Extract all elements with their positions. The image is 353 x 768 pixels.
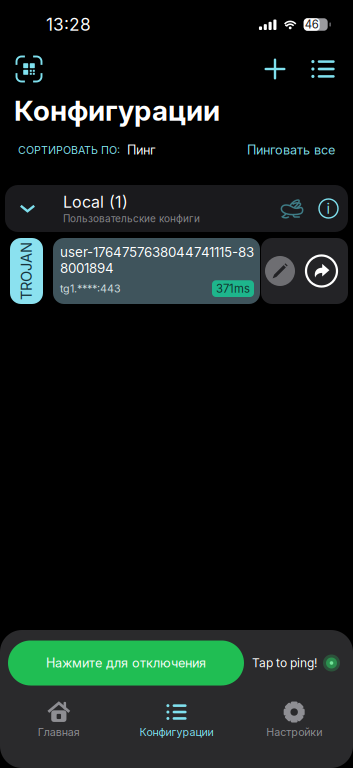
- button[interactable]: user-1764757638044741115-838001894: [53, 238, 260, 304]
- button[interactable]: Конфигурации: [118, 696, 235, 744]
- staticText: tg1.****:443: [60, 282, 121, 295]
- button[interactable]: Edit configuration: [265, 256, 295, 286]
- staticText: i: [326, 200, 330, 217]
- staticText: Главная: [38, 725, 80, 738]
- button[interactable]: Local (1): [5, 185, 348, 232]
- staticText: Пользовательские конфиги: [63, 213, 200, 225]
- button[interactable]: Главная: [0, 696, 118, 744]
- staticText: Конфигурации: [139, 725, 213, 738]
- staticText: Пинговать все: [247, 142, 335, 158]
- staticText: user-1764757638044741115-838001894: [60, 244, 254, 276]
- button[interactable]: Пинговать все: [247, 138, 335, 162]
- button[interactable]: Share configuration: [306, 255, 337, 286]
- staticText: TROJAN: [0, 262, 55, 280]
- staticText: Нажмите для отключения: [46, 655, 206, 671]
- button[interactable]: Tap to ping: [252, 654, 340, 671]
- staticText: Настройки: [266, 725, 322, 738]
- staticText: Конфигурации: [14, 94, 220, 127]
- staticText: 46: [305, 18, 319, 31]
- staticText: 13:28: [46, 14, 91, 35]
- staticText: СОРТИРОВАТЬ ПО:: [18, 143, 120, 156]
- button[interactable]: Scan QR code: [14, 52, 44, 86]
- button[interactable]: СОРТИРОВАТЬ ПО:: [18, 138, 156, 162]
- button[interactable]: Sort options: [306, 53, 340, 85]
- button[interactable]: Настройки: [235, 696, 353, 744]
- staticText: Пинг: [127, 142, 156, 158]
- staticText: Local (1): [63, 192, 128, 212]
- staticText: 371ms: [216, 282, 250, 295]
- staticText: Tap to ping!: [252, 656, 317, 670]
- button[interactable]: Add configuration: [258, 53, 292, 85]
- button[interactable]: Нажмите для отключения: [8, 640, 244, 685]
